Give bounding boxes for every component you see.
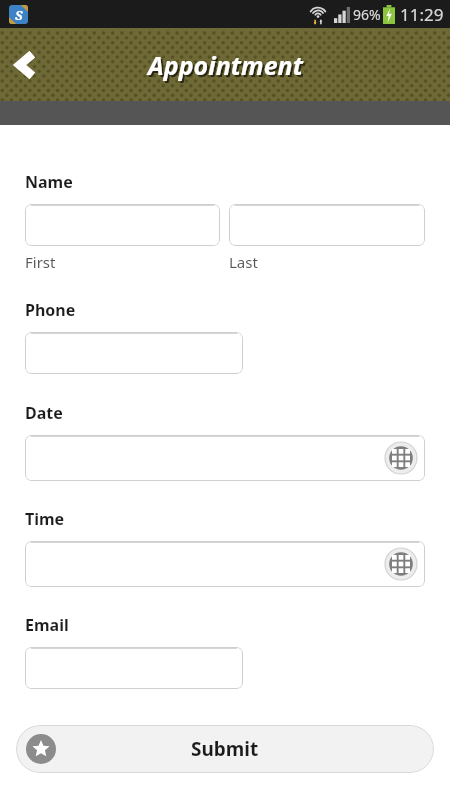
button[interactable]: Pick time: [25, 541, 425, 587]
staticText: S: [15, 6, 23, 24]
staticText: Time: [25, 508, 65, 530]
staticText: Email: [25, 614, 69, 636]
staticText: 96%: [353, 5, 381, 24]
button[interactable]: [229, 204, 425, 246]
staticText: Appointment: [150, 50, 305, 84]
staticText: 11:29: [400, 3, 444, 26]
button[interactable]: Submit: [16, 725, 434, 773]
staticText: Last: [229, 252, 258, 272]
button[interactable]: Back: [4, 43, 48, 87]
staticText: First: [25, 252, 56, 272]
button[interactable]: [25, 204, 220, 246]
button[interactable]: [25, 647, 243, 689]
staticText: Name: [25, 171, 73, 193]
staticText: Submit: [191, 736, 259, 762]
staticText: Date: [25, 402, 63, 424]
staticText: Phone: [25, 299, 76, 321]
button[interactable]: [25, 332, 243, 374]
staticText: Appointment: [148, 48, 303, 82]
button[interactable]: Pick date: [25, 435, 425, 481]
